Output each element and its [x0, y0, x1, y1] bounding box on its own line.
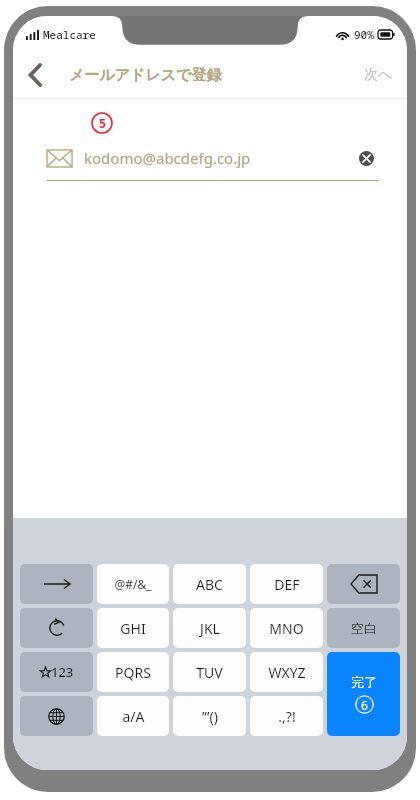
- staticText: Mealcare: [43, 27, 96, 42]
- button[interactable]: WXYZ: [250, 652, 323, 692]
- staticText: 次へ: [364, 66, 393, 84]
- staticText: TUV: [196, 663, 223, 682]
- button[interactable]: GHI: [97, 608, 169, 648]
- button[interactable]: Key: [20, 564, 93, 604]
- button[interactable]: Key: [20, 696, 93, 736]
- button[interactable]: 完了: [327, 652, 400, 736]
- button[interactable]: 次へ: [350, 53, 407, 97]
- button[interactable]: Key: [20, 652, 93, 692]
- button[interactable]: MNO: [250, 608, 323, 648]
- staticText: 完了: [351, 674, 377, 690]
- button[interactable]: kodomo@abcdefg.co.jp: [47, 145, 379, 171]
- staticText: MNO: [269, 619, 304, 638]
- button[interactable]: @#/&_: [97, 564, 169, 604]
- staticText: ’”(): [202, 707, 218, 726]
- button[interactable]: JKL: [173, 608, 246, 648]
- staticText: GHI: [120, 619, 146, 638]
- button[interactable]: ABC: [173, 564, 246, 604]
- button[interactable]: TUV: [173, 652, 246, 692]
- staticText: a/A: [122, 707, 145, 726]
- button[interactable]: ’”(): [173, 696, 246, 736]
- staticText: kodomo@abcdefg.co.jp: [84, 148, 251, 168]
- staticText: .,?!: [278, 707, 296, 726]
- button[interactable]: Key: [327, 564, 400, 604]
- staticText: JKL: [200, 619, 220, 638]
- staticText: 123: [51, 663, 74, 681]
- button[interactable]: a/A: [97, 696, 169, 736]
- staticText: WXYZ: [268, 663, 306, 682]
- staticText: 90%: [354, 27, 374, 42]
- staticText: @#/&_: [114, 576, 152, 592]
- staticText: 5: [99, 115, 106, 131]
- button[interactable]: DEF: [250, 564, 323, 604]
- button[interactable]: Clear text: [353, 145, 379, 171]
- button[interactable]: Key: [327, 608, 400, 648]
- staticText: メールアドレスで登録: [69, 66, 222, 85]
- staticText: ABC: [196, 575, 223, 594]
- staticText: PQRS: [115, 663, 151, 682]
- staticText: DEF: [274, 575, 300, 594]
- button[interactable]: PQRS: [97, 652, 169, 692]
- staticText: 6: [361, 697, 368, 713]
- staticText: 空白: [351, 620, 377, 636]
- button[interactable]: Key: [20, 608, 93, 648]
- button[interactable]: Back: [13, 53, 57, 97]
- button[interactable]: .,?!: [250, 696, 323, 736]
